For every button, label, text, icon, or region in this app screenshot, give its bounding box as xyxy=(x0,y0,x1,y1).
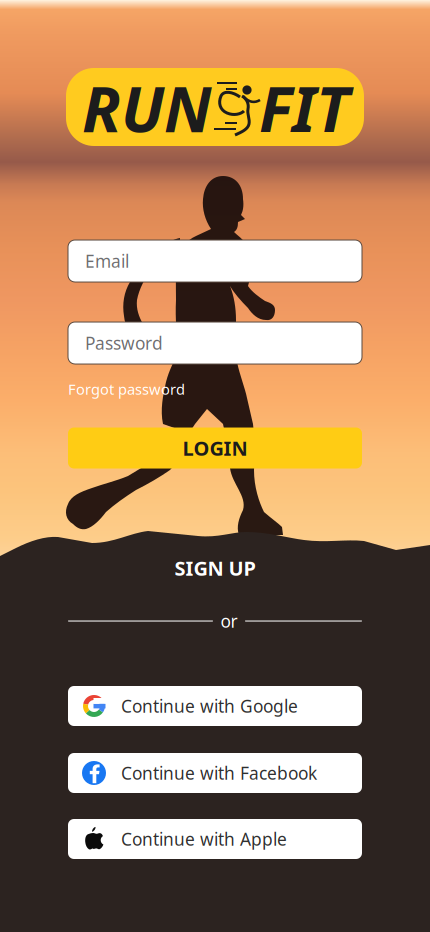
button[interactable]: Continue with Facebook xyxy=(68,753,362,793)
staticText: Continue with Google xyxy=(121,694,298,717)
staticText: Continue with Facebook xyxy=(121,761,317,784)
staticText: LOGIN xyxy=(182,435,247,461)
staticText: or xyxy=(220,609,237,632)
staticText: RUN xyxy=(82,66,212,150)
button[interactable]: Continue with Google xyxy=(68,686,362,726)
staticText: FIT xyxy=(259,66,349,150)
button[interactable]: Forgot password xyxy=(68,379,362,399)
button[interactable]: SIGN UP xyxy=(125,553,305,583)
button[interactable]: LOGIN xyxy=(68,427,362,468)
staticText: Email xyxy=(85,249,129,272)
button[interactable]: Password xyxy=(68,322,362,364)
button[interactable]: Continue with Apple xyxy=(68,819,362,859)
staticText: Password xyxy=(85,331,163,354)
staticText: Forgot password xyxy=(68,379,185,399)
button[interactable]: Email xyxy=(68,240,362,282)
staticText: SIGN UP xyxy=(174,555,255,581)
staticText: Continue with Apple xyxy=(121,827,287,850)
